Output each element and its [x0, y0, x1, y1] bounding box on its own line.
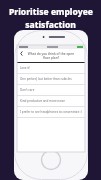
staticText: What do you think of the open floor plan…	[25, 52, 77, 60]
button[interactable]: Love it!	[17, 63, 85, 73]
staticText: Kind productive and more noise	[20, 99, 65, 103]
button[interactable]: I prefer to see headphones to concentrat…	[17, 107, 85, 117]
staticText: Don't care	[20, 88, 35, 92]
staticText: Prioritise employee	[9, 6, 93, 18]
staticText: Love it!	[20, 66, 30, 70]
staticText: I prefer to see headphones to concentrat…	[20, 110, 82, 114]
staticText: satisfaction	[25, 19, 76, 31]
staticText: One perked, but better than cubicles	[20, 77, 72, 81]
button[interactable]: Back	[18, 50, 25, 57]
button[interactable]: Don't care	[17, 85, 85, 95]
button[interactable]: One perked, but better than cubicles	[17, 74, 85, 84]
button[interactable]: Kind productive and more noise	[17, 96, 85, 106]
